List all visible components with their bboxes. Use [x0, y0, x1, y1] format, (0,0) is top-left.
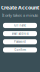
staticText: Create Account [1, 4, 39, 11]
staticText: Confirm [14, 48, 25, 52]
staticText: Full name [13, 24, 26, 27]
staticText: Email address [11, 32, 28, 35]
staticText: It only takes a minute [2, 13, 38, 18]
staticText: Password [14, 40, 26, 43]
